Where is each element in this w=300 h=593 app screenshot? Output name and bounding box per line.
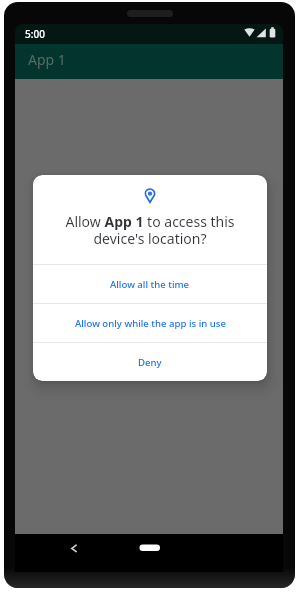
- staticText: App 1: [28, 50, 66, 69]
- button[interactable]: Deny: [33, 343, 267, 381]
- button[interactable]: Allow all the time: [33, 265, 267, 303]
- staticText: 5:00: [25, 27, 45, 41]
- staticText: Allow App 1 to access this device's loca…: [33, 212, 267, 248]
- staticText: Allow all the time: [110, 278, 190, 291]
- staticText: Allow only while the app is in use: [75, 317, 226, 330]
- staticText: Deny: [138, 356, 162, 369]
- button[interactable]: Allow only while the app is in use: [33, 304, 267, 342]
